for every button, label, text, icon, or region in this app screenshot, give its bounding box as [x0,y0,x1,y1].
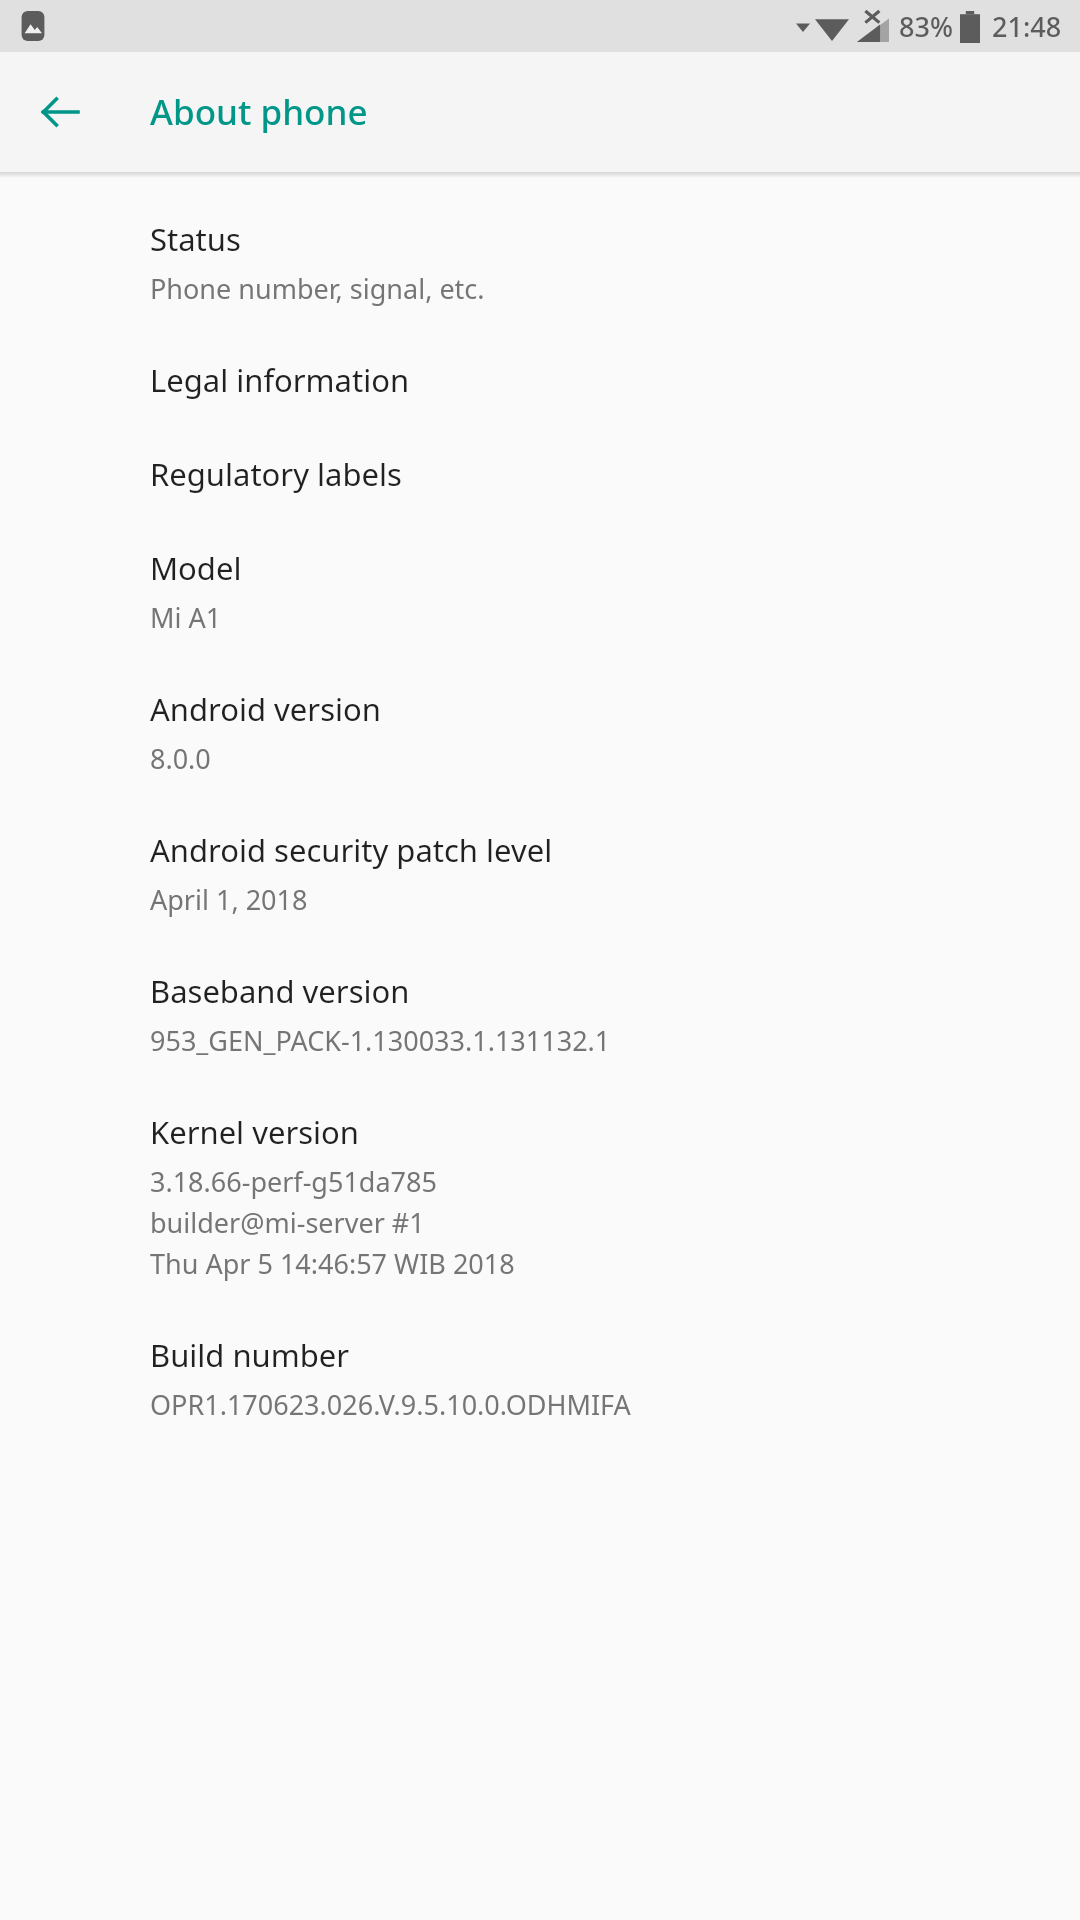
staticText: OPR1.170623.026.V.9.5.10.0.ODHMIFA [150,1386,631,1423]
staticText: Regulatory labels [150,453,402,495]
button[interactable]: Status [0,192,1080,333]
staticText: About phone [150,88,368,136]
staticText: Status [150,218,241,260]
staticText: 3.18.66-perf-g51da785 [150,1163,437,1200]
staticText: Legal information [150,359,410,401]
staticText: 21:48 [992,8,1062,45]
staticText: April 1, 2018 [150,881,308,918]
button[interactable]: Android version [0,662,1080,803]
button[interactable]: Back [24,76,96,148]
staticText: Kernel version [150,1111,359,1153]
staticText: Thu Apr 5 14:46:57 WIB 2018 [150,1245,515,1282]
staticText: Build number [150,1334,350,1376]
staticText: Android security patch level [150,829,553,871]
staticText: 8.0.0 [150,740,211,777]
button[interactable]: Baseband version [0,944,1080,1085]
staticText: Phone number, signal, etc. [150,270,485,307]
button[interactable]: Model [0,521,1080,662]
staticText: builder@mi-server #1 [150,1204,425,1241]
button[interactable]: Regulatory labels [0,427,1080,521]
button[interactable]: Android security patch level [0,803,1080,944]
staticText: Model [150,547,242,589]
staticText: Android version [150,688,381,730]
staticText: Mi A1 [150,599,222,636]
staticText: 83% [899,8,953,45]
button[interactable]: Build number [0,1308,1080,1449]
button[interactable]: Legal information [0,333,1080,427]
button[interactable]: Kernel version [0,1085,1080,1308]
staticText: 953_GEN_PACK-1.130033.1.131132.1 [150,1022,611,1059]
staticText: Baseband version [150,970,410,1012]
